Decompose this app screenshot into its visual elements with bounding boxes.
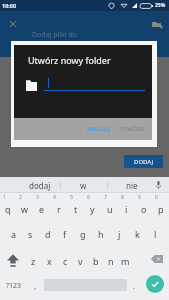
button[interactable]: Backspace	[133, 247, 169, 274]
button[interactable]: DODAJ	[124, 155, 163, 168]
staticText: 8	[121, 194, 124, 201]
staticText: j	[118, 228, 121, 240]
staticText: UTWÓRZ	[119, 125, 145, 133]
button[interactable]: Shift	[0, 247, 25, 274]
staticText: 1	[3, 194, 6, 201]
staticText: Utwórz nowy folder	[28, 54, 111, 66]
staticText: f	[63, 228, 67, 240]
staticText: g	[80, 228, 86, 240]
staticText: h	[98, 228, 104, 240]
staticText: 9	[138, 194, 141, 201]
button[interactable]: New folder	[148, 15, 166, 33]
button[interactable]: ?123	[0, 274, 28, 300]
staticText: ANULUJ	[87, 125, 111, 133]
staticText: z	[31, 255, 36, 267]
staticText: oo	[0, 43, 13, 58]
button[interactable]: s	[22, 220, 39, 247]
staticText: m	[121, 255, 130, 267]
staticText: i	[125, 203, 128, 215]
staticText: 0	[155, 194, 158, 201]
button[interactable]: m	[118, 247, 133, 274]
button[interactable]: j	[110, 220, 128, 247]
button[interactable]: c	[57, 247, 73, 274]
button[interactable]: v	[73, 247, 88, 274]
button[interactable]: f	[56, 220, 74, 247]
button[interactable]: 7	[101, 193, 118, 220]
staticText: 2	[19, 194, 22, 201]
button[interactable]: ,	[28, 274, 43, 300]
staticText: t	[74, 203, 78, 215]
staticText: b	[93, 255, 99, 267]
button[interactable]: nie	[107, 177, 148, 193]
button[interactable]: dodaj	[0, 177, 60, 193]
button[interactable]: z	[25, 247, 41, 274]
button[interactable]: x	[41, 247, 57, 274]
button[interactable]: d	[39, 220, 56, 247]
staticText: y	[90, 203, 95, 215]
staticText: d	[45, 228, 51, 240]
staticText: 3	[36, 194, 39, 201]
button[interactable]: 0	[152, 193, 169, 220]
button[interactable]: 4	[50, 193, 67, 220]
staticText: v	[78, 255, 83, 267]
button[interactable]: Voice input	[147, 177, 169, 193]
staticText: nie	[126, 180, 138, 191]
staticText: Dodaj pliki do	[32, 30, 78, 40]
button[interactable]: ANULUJ	[83, 122, 115, 136]
button[interactable]: 8	[118, 193, 135, 220]
staticText: e	[39, 203, 45, 215]
button[interactable]: 3	[33, 193, 50, 220]
button[interactable]: 5	[67, 193, 84, 220]
staticText: w	[80, 180, 87, 191]
staticText: k	[135, 228, 140, 240]
button[interactable]: l	[146, 220, 164, 247]
staticText: p	[158, 203, 164, 215]
staticText: 4	[53, 194, 56, 201]
button[interactable]: Enter	[146, 275, 164, 293]
button[interactable]: w	[60, 177, 107, 193]
staticText: dodaj	[29, 180, 51, 191]
staticText: 7	[104, 194, 107, 201]
staticText: ?123	[6, 281, 22, 291]
staticText: 25%	[155, 2, 166, 9]
staticText: .	[133, 280, 136, 291]
button[interactable]: h	[92, 220, 110, 247]
staticText: 5	[70, 194, 73, 201]
staticText: c	[63, 255, 68, 267]
button[interactable]: UTWÓRZ	[115, 122, 149, 136]
button[interactable]: n	[103, 247, 118, 274]
staticText: 10:00	[2, 2, 17, 9]
staticText: 6	[87, 194, 90, 201]
staticText: ,	[34, 280, 37, 291]
staticText: l	[154, 228, 157, 240]
staticText: r	[57, 203, 61, 215]
staticText: q	[5, 203, 11, 215]
button[interactable]: 2	[16, 193, 33, 220]
staticText: w	[21, 203, 29, 215]
button[interactable]: 1	[0, 193, 16, 220]
staticText: u	[107, 203, 113, 215]
staticText: a	[11, 228, 17, 240]
button[interactable]: b	[88, 247, 103, 274]
staticText: o	[141, 203, 147, 215]
button[interactable]: Close	[5, 16, 21, 32]
staticText: n	[108, 255, 114, 267]
button[interactable]: g	[74, 220, 92, 247]
staticText: x	[47, 255, 52, 267]
staticText: s	[28, 228, 33, 240]
button[interactable]: .	[127, 274, 142, 300]
staticText: DODAJ	[134, 158, 154, 166]
button[interactable]: 6	[84, 193, 101, 220]
button[interactable]: 9	[135, 193, 152, 220]
button[interactable]: a	[5, 220, 22, 247]
button[interactable]: k	[128, 220, 146, 247]
